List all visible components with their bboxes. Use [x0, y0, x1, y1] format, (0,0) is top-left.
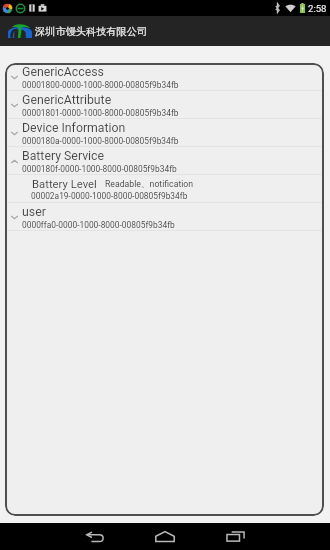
other: Collapse: [11, 159, 18, 164]
other: Expand: [11, 103, 18, 108]
staticText: 0000ffa0-0000-1000-8000-00805f9b34fb: [22, 220, 175, 230]
other: Expand: [11, 215, 18, 220]
button[interactable]: Expand: [5, 91, 324, 118]
other: Expand: [11, 131, 18, 136]
button[interactable]: Battery Level: [5, 175, 324, 202]
button[interactable]: Expand: [5, 63, 324, 90]
staticText: 0000180f-0000-1000-8000-00805f9b34fb: [22, 164, 177, 174]
staticText: Battery Service: [22, 149, 105, 163]
staticText: 深圳市馒头科技有限公司: [35, 25, 148, 38]
staticText: 00002a19-0000-1000-8000-00805f9b34fb: [31, 191, 188, 201]
staticText: GenericAttribute: [22, 93, 112, 107]
button[interactable]: Collapse: [5, 147, 324, 174]
button[interactable]: Recent apps: [217, 523, 253, 550]
other: Expand: [11, 75, 18, 80]
staticText: Device Information: [22, 121, 126, 135]
button[interactable]: Expand: [5, 119, 324, 146]
button[interactable]: Back: [77, 523, 113, 550]
button[interactable]: Home: [147, 523, 183, 550]
staticText: 00001800-0000-1000-8000-00805f9b34fb: [22, 80, 179, 90]
staticText: user: [22, 205, 46, 219]
button[interactable]: Expand: [5, 203, 324, 230]
staticText: GenericAccess: [22, 65, 104, 79]
staticText: Battery Level: [32, 178, 97, 191]
staticText: Readable、notification: [105, 179, 194, 190]
staticText: 2:58: [308, 3, 327, 14]
staticText: 0000180a-0000-1000-8000-00805f9b34fb: [22, 136, 179, 146]
staticText: 00001801-0000-1000-8000-00805f9b34fb: [22, 108, 179, 118]
